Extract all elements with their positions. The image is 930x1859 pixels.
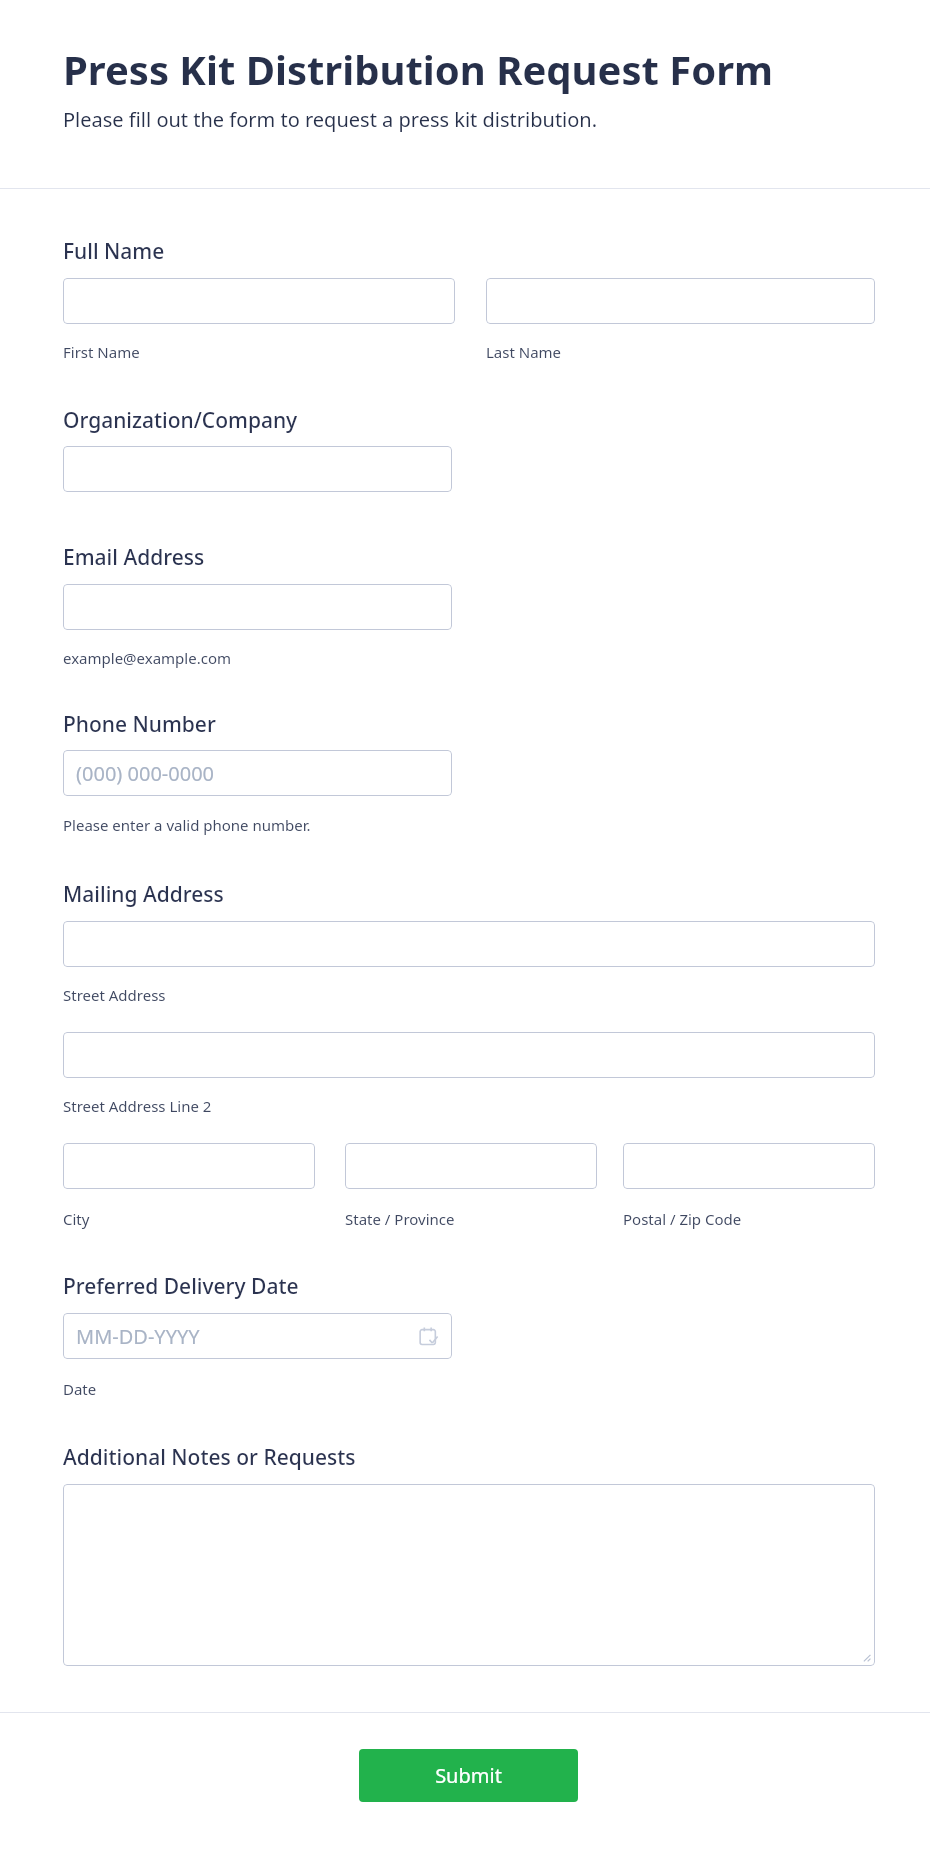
staticText: Submit <box>435 1762 502 1789</box>
staticText: MM-DD-YYYY <box>76 1323 200 1350</box>
staticText: Street Address <box>63 985 166 1005</box>
staticText: State / Province <box>345 1209 455 1229</box>
button[interactable]: Additional Notes or Requests <box>63 1484 875 1666</box>
button[interactable]: Street Address <box>63 921 875 967</box>
staticText: Press Kit Distribution Request Form <box>63 42 774 96</box>
staticText: Full Name <box>63 237 165 266</box>
staticText: (000) 000-0000 <box>76 760 215 787</box>
button[interactable]: Preferred Delivery Date <box>63 1313 452 1359</box>
button[interactable]: Submit <box>359 1749 578 1802</box>
button[interactable]: Phone Number <box>63 750 452 796</box>
button[interactable]: Street Address Line 2 <box>63 1032 875 1078</box>
staticText: example@example.com <box>63 648 231 668</box>
staticText: Additional Notes or Requests <box>63 1443 356 1472</box>
staticText: Preferred Delivery Date <box>63 1272 299 1301</box>
button[interactable]: First Name <box>63 278 455 324</box>
button[interactable]: Postal or Zip Code <box>623 1143 875 1189</box>
button[interactable]: Email Address <box>63 584 452 630</box>
staticText: Please fill out the form to request a pr… <box>63 106 598 133</box>
staticText: Phone Number <box>63 710 216 739</box>
staticText: Postal / Zip Code <box>623 1209 742 1229</box>
staticText: Please enter a valid phone number. <box>63 815 311 835</box>
staticText: Organization/Company <box>63 406 298 435</box>
button[interactable]: Organization or Company <box>63 446 452 492</box>
staticText: Street Address Line 2 <box>63 1096 212 1116</box>
staticText: First Name <box>63 342 140 362</box>
staticText: Email Address <box>63 543 205 572</box>
staticText: Date <box>63 1379 97 1399</box>
staticText: City <box>63 1209 90 1229</box>
button[interactable]: City <box>63 1143 315 1189</box>
staticText: Mailing Address <box>63 880 224 909</box>
button[interactable]: State or Province <box>345 1143 597 1189</box>
staticText: Last Name <box>486 342 562 362</box>
button[interactable]: Last Name <box>486 278 875 324</box>
